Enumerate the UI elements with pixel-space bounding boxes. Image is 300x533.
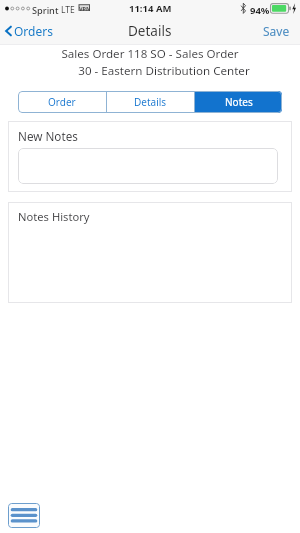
staticText: Orders <box>14 23 53 39</box>
button[interactable]: Save <box>261 19 292 43</box>
staticText: 11:14 AM <box>129 2 172 15</box>
staticText: 30 - Eastern Distribution Center <box>78 63 250 79</box>
staticText: Details <box>128 22 172 40</box>
button[interactable]: Menu <box>8 503 40 528</box>
staticText: Notes <box>225 95 253 109</box>
button[interactable] <box>18 148 278 184</box>
staticText: Order <box>48 95 76 109</box>
button[interactable]: Details <box>107 91 194 113</box>
staticText: Sales Order 118 SO - Sales Order <box>61 46 239 62</box>
staticText: 94% <box>250 4 270 17</box>
staticText: Save <box>263 23 290 39</box>
staticText: New Notes <box>18 128 78 144</box>
staticText: Sprint <box>32 4 59 17</box>
button[interactable]: Notes <box>195 91 282 113</box>
staticText: LTE <box>61 4 75 16</box>
button[interactable]: Order <box>18 91 106 113</box>
button[interactable]: Orders <box>3 19 55 43</box>
staticText: Details <box>134 95 167 109</box>
staticText: VPN <box>79 5 91 12</box>
staticText: Notes History <box>18 209 90 224</box>
